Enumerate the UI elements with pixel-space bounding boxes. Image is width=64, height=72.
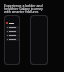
staticText: Experience a bolder and bbox=[4, 3, 43, 8]
button[interactable] bbox=[6, 34, 19, 37]
button[interactable] bbox=[6, 30, 19, 33]
button[interactable] bbox=[6, 38, 19, 41]
staticText: with smarter features bbox=[4, 9, 39, 14]
button[interactable] bbox=[6, 26, 19, 29]
staticText: healthier Galaxy journey bbox=[4, 6, 43, 11]
